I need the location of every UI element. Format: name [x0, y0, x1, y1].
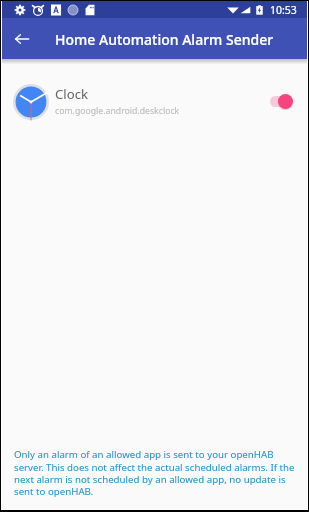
staticText: com.google.android.deskclock: [55, 105, 180, 117]
button[interactable]: Back: [2, 18, 43, 59]
staticText: 10:53: [270, 3, 297, 17]
button[interactable]: Toggle: [270, 91, 293, 111]
button[interactable]: Clock: [2, 80, 307, 121]
staticText: Home Automation Alarm Sender: [55, 30, 274, 49]
staticText: Only an alarm of an allowed app is sent …: [14, 448, 300, 497]
staticText: Clock: [55, 85, 89, 103]
